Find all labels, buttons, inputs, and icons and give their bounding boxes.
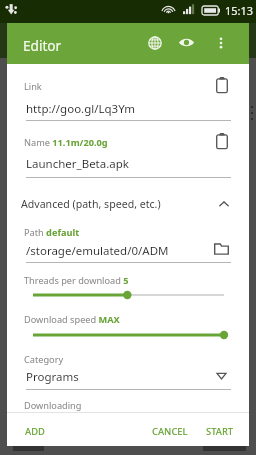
button[interactable]: Preview: [172, 28, 201, 57]
staticText: Editor: [23, 36, 62, 55]
staticText: START: [206, 425, 234, 438]
button[interactable]: Open in browser: [140, 28, 169, 57]
staticText: http://goo.gl/Lq3Ym: [26, 101, 136, 117]
staticText: Launcher_Beta.apk: [26, 156, 129, 172]
button[interactable]: START: [200, 419, 240, 443]
button[interactable]: Paste link: [209, 72, 235, 98]
button[interactable]: ADD: [19, 419, 51, 443]
button[interactable]: Choose folder: [208, 236, 234, 262]
staticText: Advanced (path, speed, etc.): [21, 197, 161, 211]
staticText: Category: [24, 353, 64, 366]
staticText: Downloading: [24, 399, 82, 412]
staticText: CANCEL: [152, 425, 188, 438]
button[interactable]: Advanced (path, speed, etc.): [13, 193, 243, 215]
button[interactable]: Slider: [28, 288, 229, 302]
staticText: Programs: [26, 369, 79, 385]
staticText: Link: [24, 80, 42, 93]
staticText: Path default: [24, 226, 80, 239]
staticText: ADD: [25, 425, 45, 438]
staticText: Download speed MAX: [24, 313, 120, 326]
staticText: /storage/emulated/0/ADM: [26, 243, 169, 259]
button[interactable]: Slider: [28, 328, 229, 342]
button[interactable]: More options: [206, 28, 235, 57]
staticText: Name 11.1m/20.0g: [24, 136, 108, 149]
staticText: Threads per download 5: [24, 274, 129, 287]
button[interactable]: CANCEL: [146, 419, 194, 443]
staticText: 15:13: [225, 3, 254, 18]
button[interactable]: Paste name: [209, 128, 235, 154]
